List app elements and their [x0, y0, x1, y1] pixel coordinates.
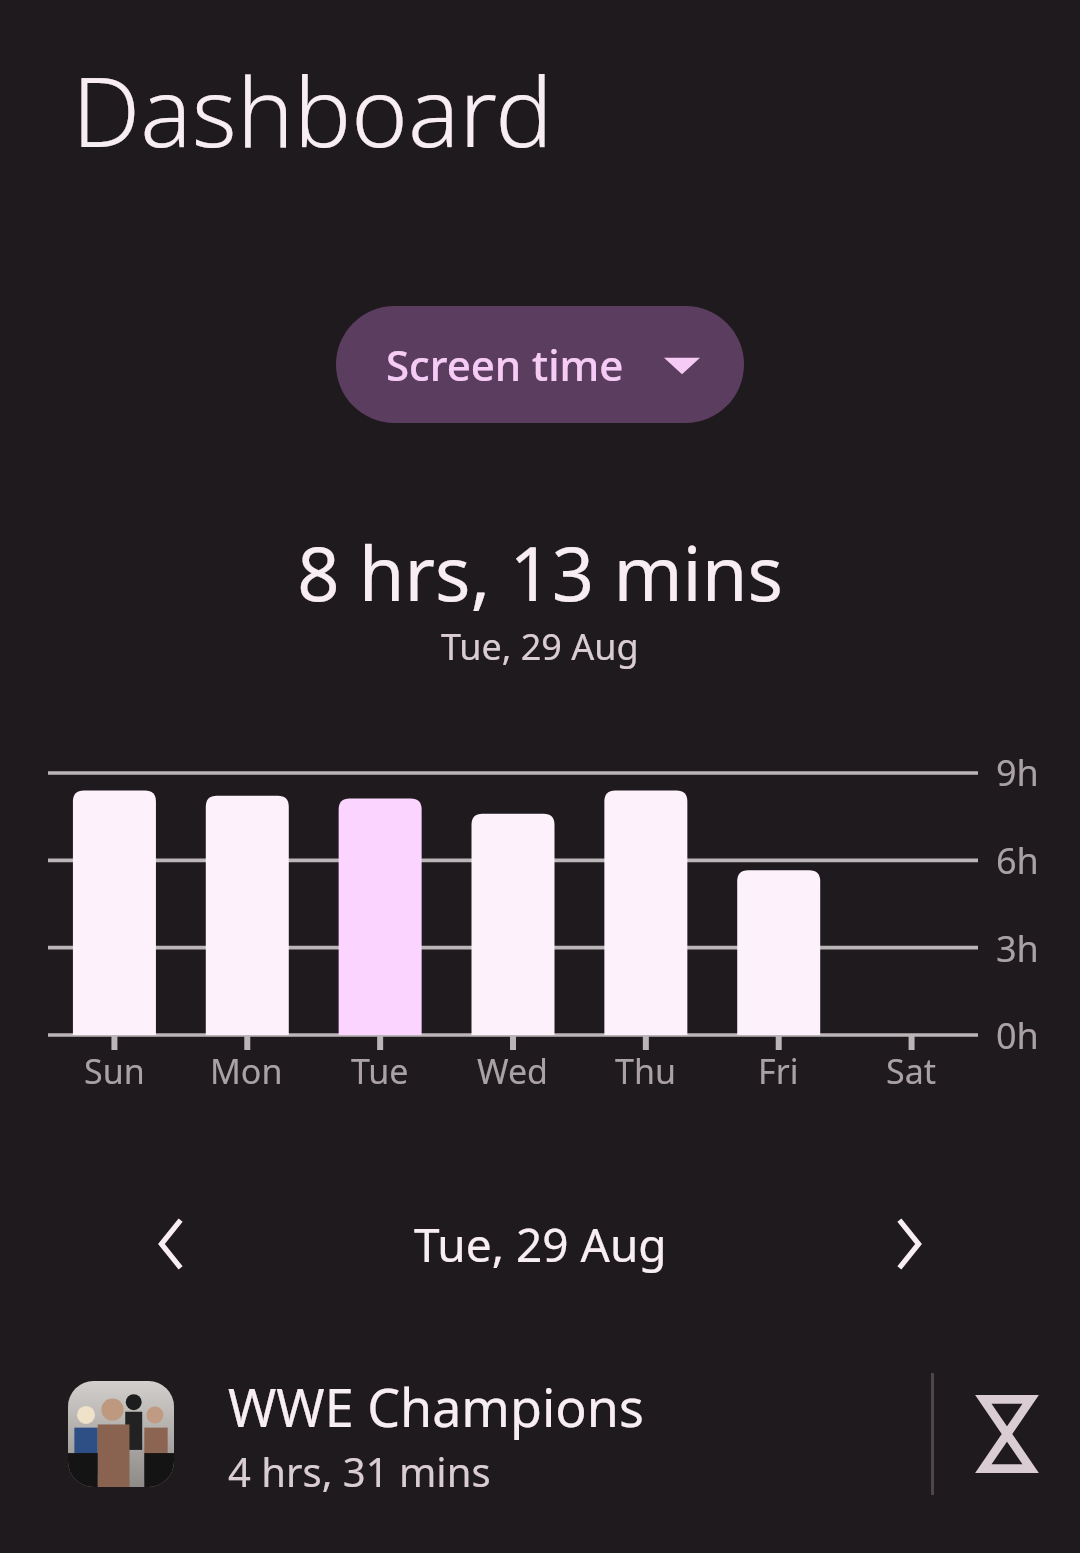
staticText: 6h: [996, 836, 1039, 885]
button[interactable]: Previous day: [128, 1201, 214, 1287]
staticText: WWE Champions: [228, 1371, 644, 1442]
staticText: 8 hrs, 13 mins: [297, 522, 783, 623]
staticText: Tue: [351, 1048, 409, 1094]
staticText: Thu: [615, 1048, 676, 1094]
staticText: 9h: [996, 748, 1039, 797]
staticText: 0h: [996, 1011, 1039, 1060]
staticText: Tue, 29 Aug: [441, 622, 639, 671]
staticText: Dashboard: [72, 44, 553, 175]
staticText: Screen time: [386, 336, 624, 393]
button[interactable]: Screen time: [336, 306, 744, 423]
button[interactable]: Set app timer: [934, 1368, 1080, 1500]
staticText: Fri: [758, 1048, 799, 1094]
button[interactable]: Next day: [866, 1201, 952, 1287]
staticText: Wed: [477, 1048, 549, 1094]
staticText: 3h: [996, 924, 1039, 973]
staticText: Mon: [210, 1048, 283, 1094]
staticText: Sat: [886, 1048, 937, 1094]
staticText: 4 hrs, 31 mins: [228, 1444, 491, 1498]
staticText: Sun: [84, 1048, 145, 1094]
staticText: Tue, 29 Aug: [414, 1213, 667, 1276]
button[interactable]: WWE Champions: [0, 1368, 1080, 1500]
